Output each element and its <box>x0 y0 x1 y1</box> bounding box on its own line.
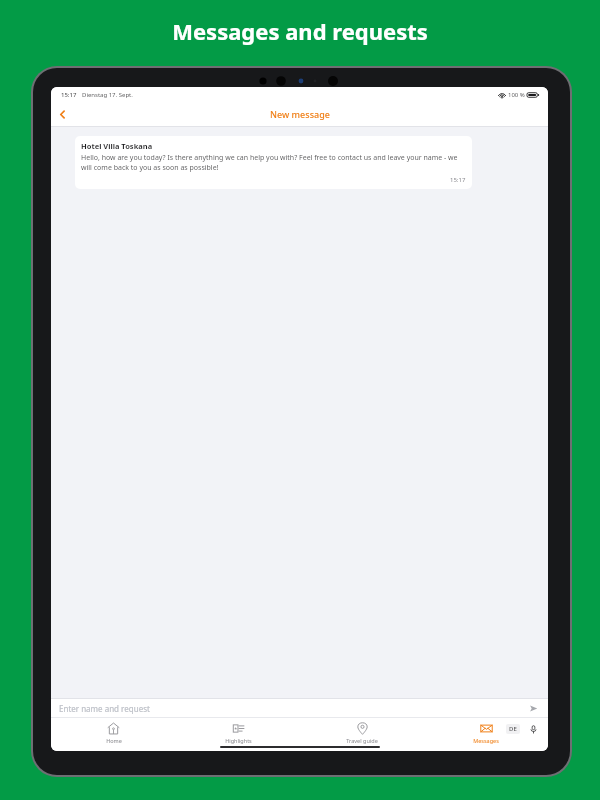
button[interactable]: Voice input <box>527 723 539 735</box>
staticText: DE <box>509 725 517 733</box>
staticText: 100 % <box>508 91 525 99</box>
button[interactable]: Highlights <box>176 718 300 751</box>
button[interactable]: Enter name and request <box>51 699 548 717</box>
staticText: Dienstag 17. Sept. <box>82 91 133 99</box>
staticText: Travel guide <box>346 737 378 744</box>
staticText: 15:17 <box>61 91 77 99</box>
staticText: Hello, how are you today? Is there anyth… <box>81 153 466 173</box>
button[interactable]: Hotel Villa Toskana <box>75 136 472 189</box>
button[interactable]: Home <box>51 718 176 751</box>
staticText: 15:17 <box>450 176 466 184</box>
staticText: Hotel Villa Toskana <box>81 141 153 151</box>
button[interactable]: Travel guide <box>300 718 424 751</box>
staticText: New message <box>270 108 330 120</box>
button[interactable]: Back <box>51 103 73 125</box>
staticText: Highlights <box>225 737 252 744</box>
staticText: Home <box>106 737 122 744</box>
button[interactable]: DE <box>506 724 520 734</box>
staticText: Enter name and request <box>59 703 150 714</box>
button[interactable]: Send <box>526 701 540 715</box>
button[interactable]: Messages <box>424 718 548 751</box>
staticText: Messages and requests <box>172 16 428 46</box>
staticText: Messages <box>473 737 499 744</box>
